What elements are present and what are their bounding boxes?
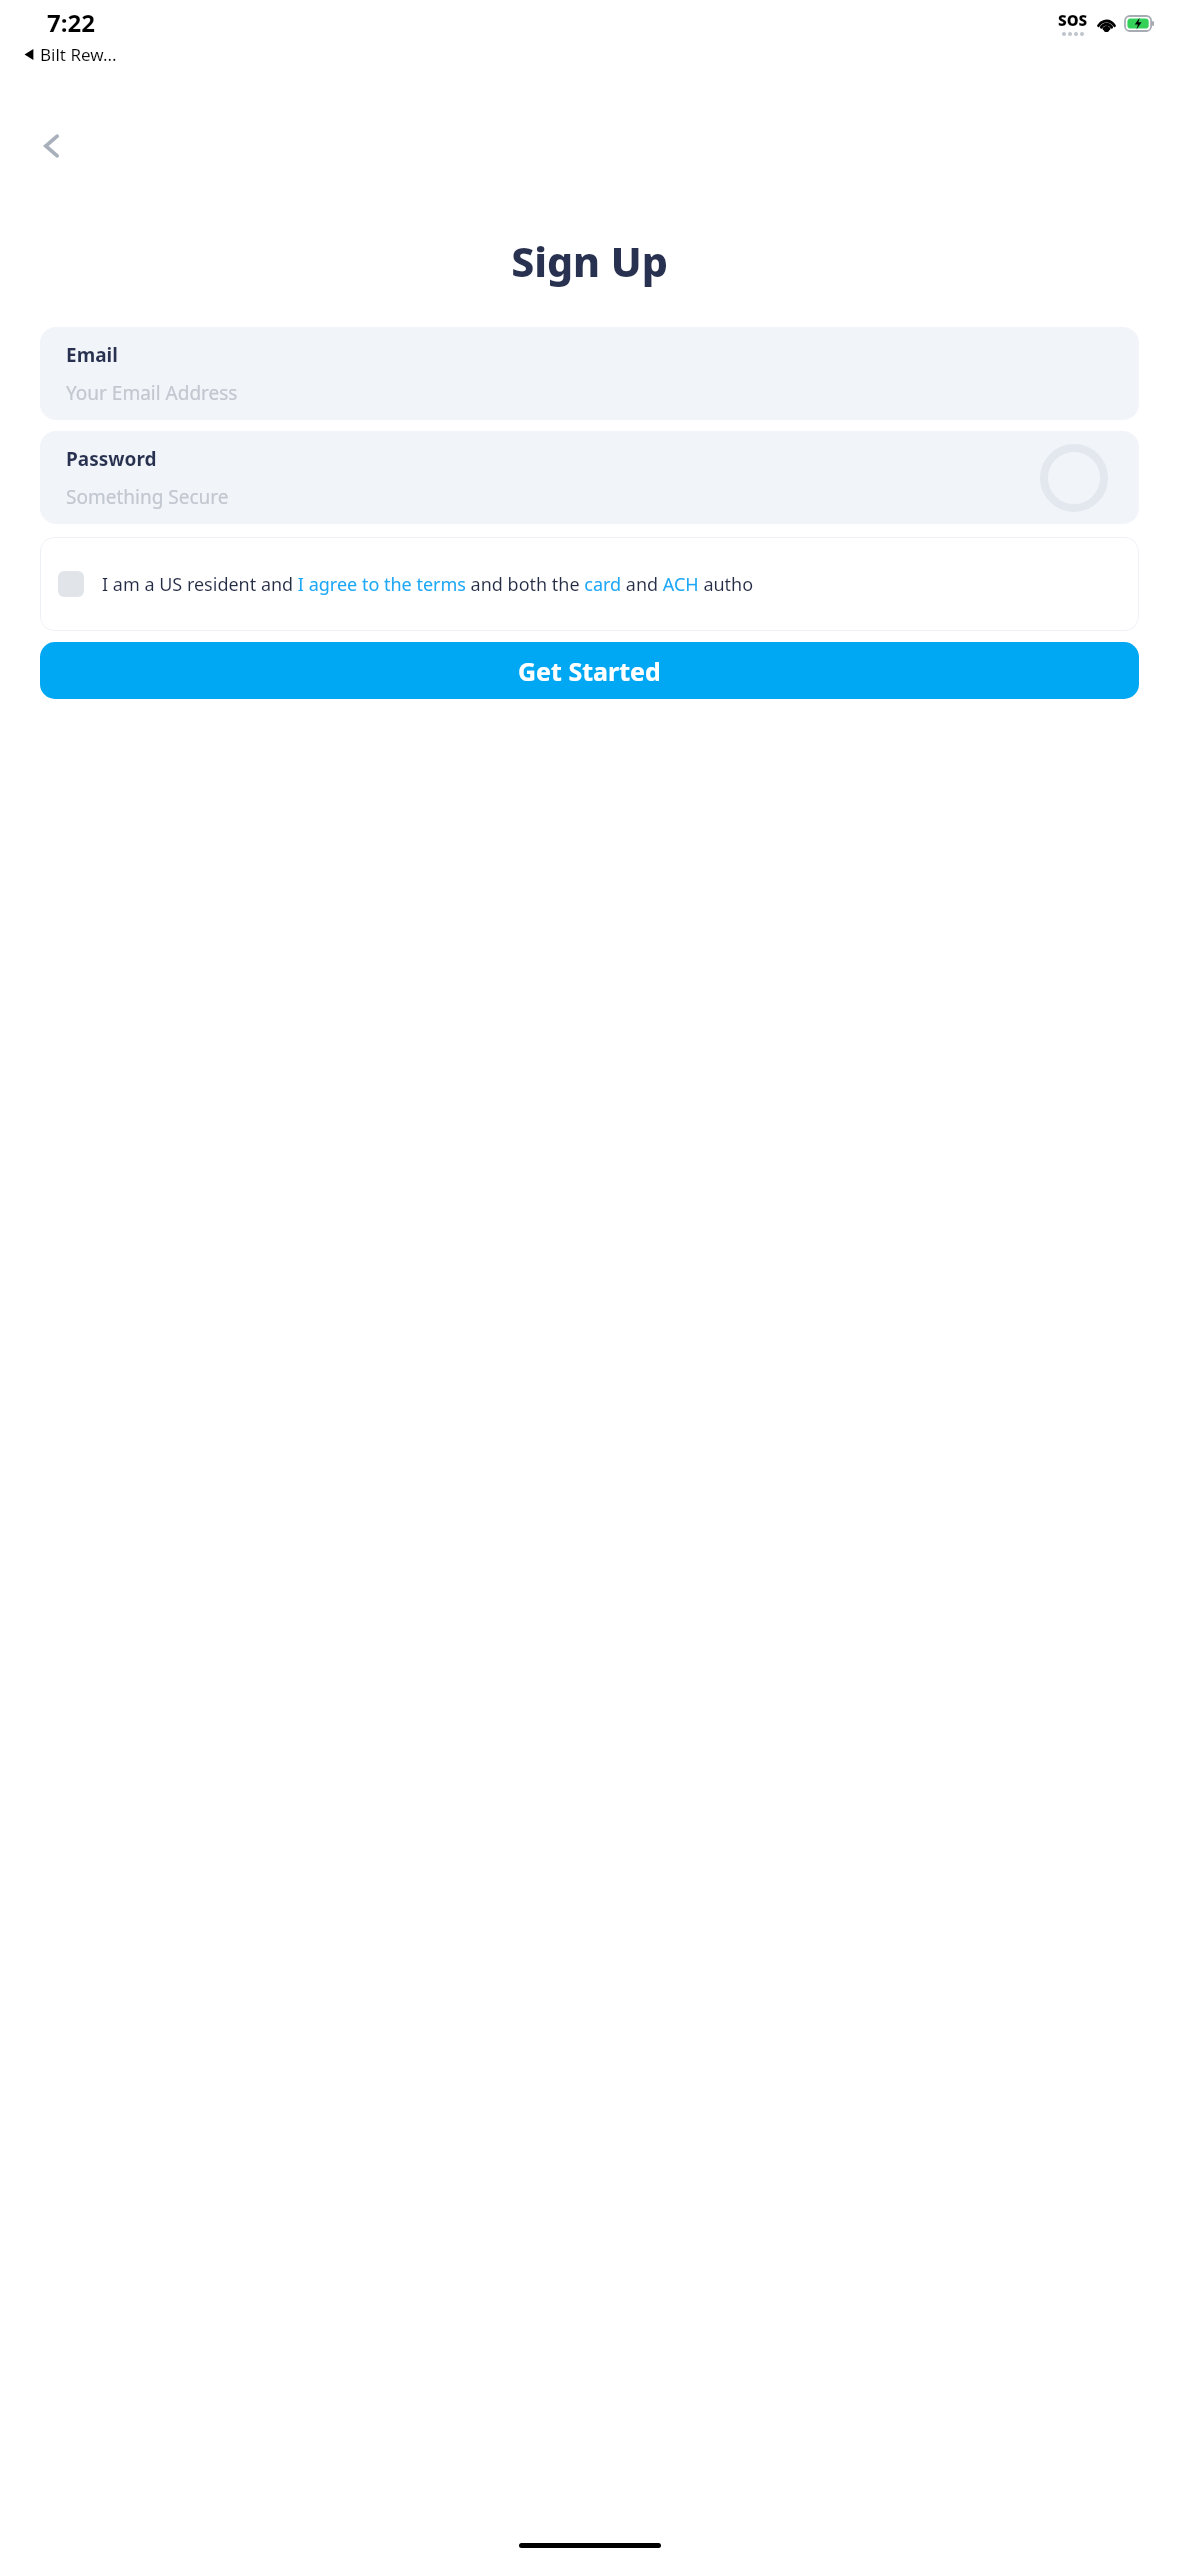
staticText: Get Started bbox=[518, 654, 661, 688]
button[interactable]: Email bbox=[40, 327, 1139, 420]
button[interactable]: I am a US resident and I agree to the te… bbox=[40, 537, 1139, 631]
staticText: Something Secure bbox=[66, 484, 229, 510]
staticText: Bilt Rew... bbox=[40, 43, 117, 66]
button[interactable]: Password bbox=[40, 431, 1139, 524]
staticText: Sign Up bbox=[0, 233, 1179, 289]
staticText: I am a US resident and I agree to the te… bbox=[102, 572, 754, 597]
staticText: Your Email Address bbox=[66, 380, 238, 406]
staticText: Password bbox=[66, 446, 157, 472]
button[interactable]: Back bbox=[28, 122, 76, 170]
button[interactable]: Get Started bbox=[40, 642, 1139, 699]
staticText: Email bbox=[66, 342, 118, 368]
staticText: SOS bbox=[1058, 10, 1088, 30]
button[interactable]: Bilt Rew... bbox=[24, 43, 117, 66]
staticText: 7:22 bbox=[47, 6, 95, 39]
